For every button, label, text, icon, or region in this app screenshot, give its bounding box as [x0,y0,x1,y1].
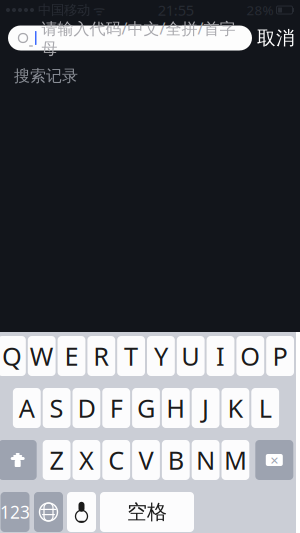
button[interactable]: O [236,336,264,376]
button[interactable]: U [177,336,205,376]
staticText: H [166,391,185,425]
staticText: C [108,443,124,477]
button[interactable]: E [58,336,85,376]
staticText: Q [2,339,22,373]
staticText: P [273,339,288,373]
button[interactable]: C [102,440,130,480]
staticText: D [77,391,95,425]
staticText: 21:55 [158,0,194,20]
button[interactable]: Dictate [67,492,96,532]
button[interactable]: I [207,336,234,376]
staticText: S [50,391,64,425]
staticText: 123 [0,500,30,523]
staticText: K [227,391,243,425]
button[interactable]: 取消 [252,23,300,53]
button[interactable]: Next keyboard [34,492,63,532]
button[interactable]: N [192,440,219,480]
button[interactable]: W [28,336,56,376]
button[interactable]: Y [147,336,175,376]
staticText: U [181,339,200,373]
staticText: 中国移动 [34,2,90,18]
staticText: W [30,339,54,373]
button[interactable]: T [117,336,145,376]
staticText: Y [154,339,168,373]
staticText: L [259,391,272,425]
button[interactable]: L [251,388,279,428]
staticText: B [168,443,184,477]
button[interactable]: V [132,440,160,480]
staticText: I [216,339,225,373]
staticText: V [138,443,153,477]
staticText: G [137,391,155,425]
staticText: 取消 [257,26,295,49]
button[interactable]: H [162,388,190,428]
button[interactable]: 123 [0,492,30,532]
button[interactable]: M [221,440,249,480]
staticText: E [64,339,78,373]
button[interactable]: Shift [0,440,37,480]
button[interactable]: 空格 [100,492,194,532]
button[interactable]: Q [0,336,26,376]
button[interactable]: S [43,388,70,428]
staticText: F [110,391,123,425]
button[interactable]: J [192,388,219,428]
staticText: J [202,391,209,425]
staticText: N [196,443,215,477]
staticText: 空格 [127,500,167,524]
staticText: 28% [246,1,273,19]
button[interactable]: Z [43,440,70,480]
button[interactable]: R [87,336,115,376]
button[interactable]: K [221,388,249,428]
button[interactable]: Delete [255,440,293,480]
button[interactable]: G [132,388,160,428]
staticText: 搜索记录 [14,66,78,86]
button[interactable]: P [266,336,294,376]
button[interactable]: A [13,388,41,428]
staticText: × [270,450,278,470]
button[interactable]: X [72,440,100,480]
staticText: ᯤ [90,1,105,19]
staticText: A [19,391,35,425]
staticText: T [124,339,138,373]
button[interactable]: F [102,388,130,428]
button[interactable]: B [162,440,190,480]
staticText: 请输入代码/中文/全拼/首字母 [41,17,235,58]
staticText: X [79,443,94,477]
staticText: O [240,339,260,373]
staticText: M [224,443,247,477]
staticText: R [93,339,109,373]
button[interactable]: D [72,388,100,428]
staticText: Z [50,443,64,477]
